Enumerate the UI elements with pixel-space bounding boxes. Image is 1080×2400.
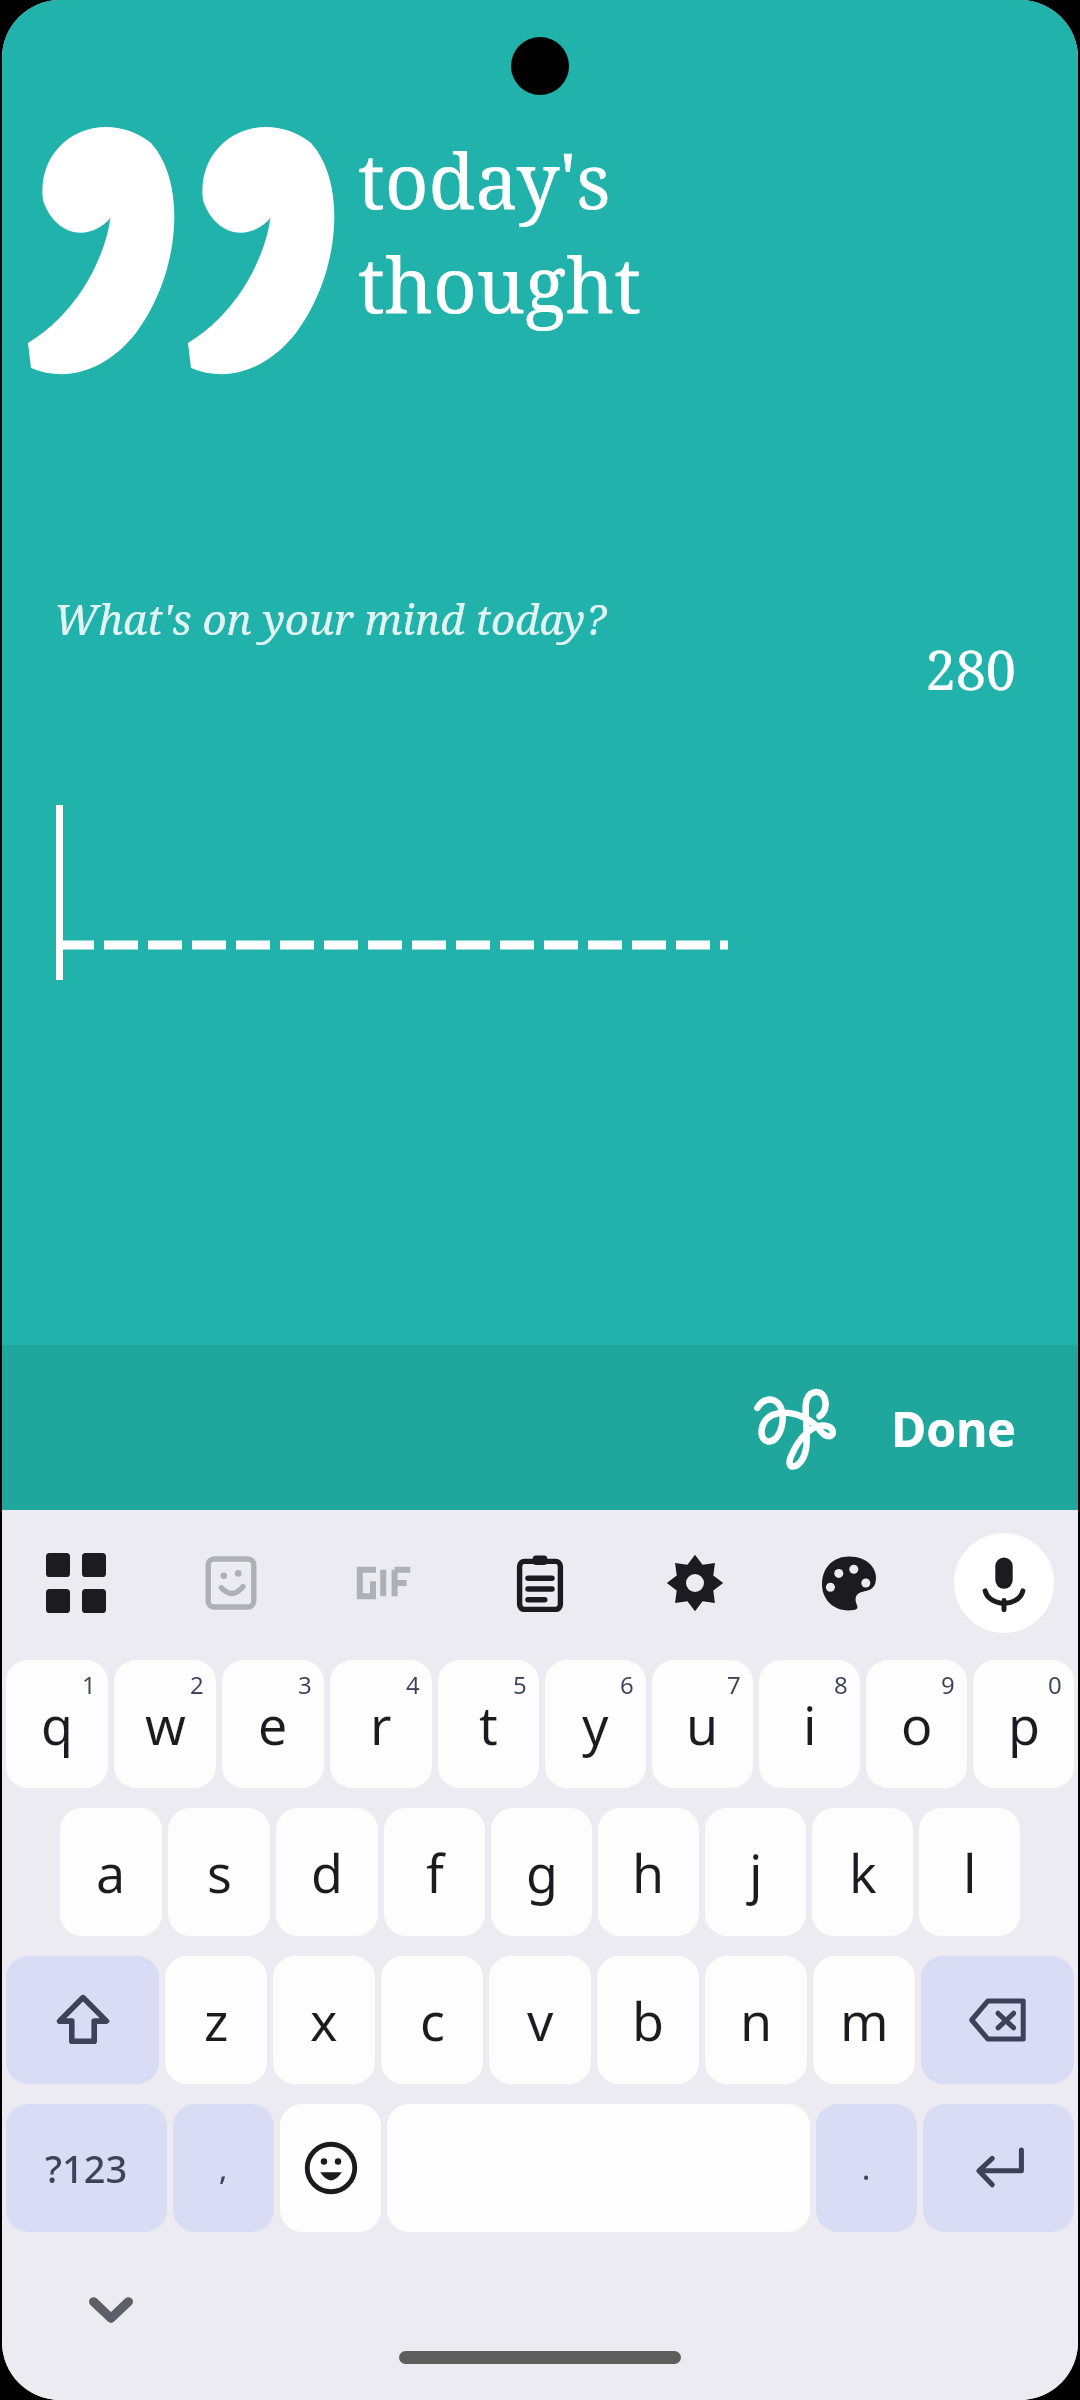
button[interactable]: Hide keyboard <box>66 2264 156 2354</box>
staticText: 2 <box>190 1668 204 1701</box>
button[interactable]: , <box>173 2104 274 2232</box>
staticText: q <box>41 1689 73 1760</box>
button[interactable]: s <box>168 1808 270 1936</box>
staticText: v <box>527 1985 554 2056</box>
button[interactable]: Apps <box>26 1533 126 1633</box>
staticText: e <box>258 1689 288 1760</box>
staticText: o <box>901 1689 933 1760</box>
staticText: y <box>582 1689 609 1760</box>
staticText: x <box>310 1985 338 2056</box>
staticText: j <box>749 1837 763 1908</box>
staticText: 5 <box>513 1668 527 1701</box>
button[interactable]: GIF <box>335 1533 435 1633</box>
staticText: l <box>963 1837 977 1908</box>
staticText: 4 <box>406 1668 420 1701</box>
button[interactable]: c <box>381 1956 483 2084</box>
button[interactable]: m <box>813 1956 915 2084</box>
staticText: 280 <box>2 632 1016 706</box>
button[interactable]: t <box>438 1660 539 1788</box>
staticText: a <box>96 1837 126 1908</box>
staticText: r <box>370 1689 392 1760</box>
button[interactable]: l <box>919 1808 1020 1936</box>
button[interactable]: Clipboard <box>490 1533 590 1633</box>
staticText: 9 <box>941 1668 955 1701</box>
button[interactable]: w <box>114 1660 216 1788</box>
button[interactable]: Shift <box>6 1956 159 2084</box>
staticText: w <box>145 1689 186 1760</box>
staticText: 8 <box>834 1668 848 1701</box>
staticText: today's <box>358 128 611 232</box>
button[interactable]: Backspace <box>921 1956 1074 2084</box>
button[interactable]: Handwriting input <box>741 1373 851 1483</box>
button[interactable]: . <box>816 2104 917 2232</box>
staticText: thought <box>358 232 642 336</box>
staticText: k <box>849 1837 877 1908</box>
staticText: , <box>219 2148 228 2189</box>
button[interactable]: g <box>491 1808 592 1936</box>
staticText: h <box>632 1837 665 1908</box>
button[interactable]: o <box>866 1660 967 1788</box>
staticText: m <box>840 1985 889 2056</box>
staticText: d <box>311 1837 343 1908</box>
button[interactable]: Stickers <box>181 1533 281 1633</box>
staticText: b <box>632 1985 664 2056</box>
button[interactable]: i <box>759 1660 860 1788</box>
button[interactable]: v <box>489 1956 591 2084</box>
button[interactable]: Voice input <box>954 1533 1054 1633</box>
staticText: ?123 <box>45 2142 128 2194</box>
staticText: n <box>740 1985 773 2056</box>
button[interactable]: q <box>6 1660 108 1788</box>
staticText: 3 <box>298 1668 312 1701</box>
button[interactable]: Enter <box>923 2104 1074 2232</box>
staticText: g <box>526 1837 558 1908</box>
button[interactable]: ?123 <box>6 2104 167 2232</box>
button[interactable]: Emoji <box>280 2104 381 2232</box>
button[interactable]: n <box>705 1956 807 2084</box>
button[interactable]: p <box>973 1660 1074 1788</box>
staticText: u <box>686 1689 719 1760</box>
button[interactable]: Settings <box>645 1533 745 1633</box>
staticText: p <box>1008 1689 1040 1760</box>
staticText: z <box>204 1985 229 2056</box>
staticText: t <box>479 1689 498 1760</box>
staticText: i <box>803 1689 817 1760</box>
staticText: . <box>862 2148 871 2189</box>
staticText: s <box>207 1837 232 1908</box>
staticText: 0 <box>1048 1668 1062 1701</box>
button[interactable]: z <box>165 1956 267 2084</box>
button[interactable]: b <box>597 1956 699 2084</box>
button[interactable]: a <box>60 1808 162 1936</box>
button[interactable]: x <box>273 1956 375 2084</box>
staticText: 1 <box>82 1668 96 1701</box>
button[interactable]: Done <box>877 1380 1030 1477</box>
button[interactable]: u <box>652 1660 753 1788</box>
staticText: c <box>420 1985 445 2056</box>
button[interactable]: r <box>330 1660 432 1788</box>
button[interactable]: f <box>384 1808 485 1936</box>
button[interactable]: h <box>598 1808 699 1936</box>
button[interactable]: j <box>705 1808 806 1936</box>
staticText: f <box>426 1837 444 1908</box>
button[interactable]: Themes <box>799 1533 899 1633</box>
staticText: What's on your mind today? <box>54 590 607 647</box>
staticText: Done <box>891 1396 1016 1461</box>
staticText: 6 <box>620 1668 634 1701</box>
button[interactable]: k <box>812 1808 913 1936</box>
button[interactable]: Thought text field <box>2 780 1078 1000</box>
button[interactable]: y <box>545 1660 646 1788</box>
staticText: 7 <box>727 1668 741 1701</box>
button[interactable]: d <box>276 1808 378 1936</box>
button[interactable]: e <box>222 1660 324 1788</box>
